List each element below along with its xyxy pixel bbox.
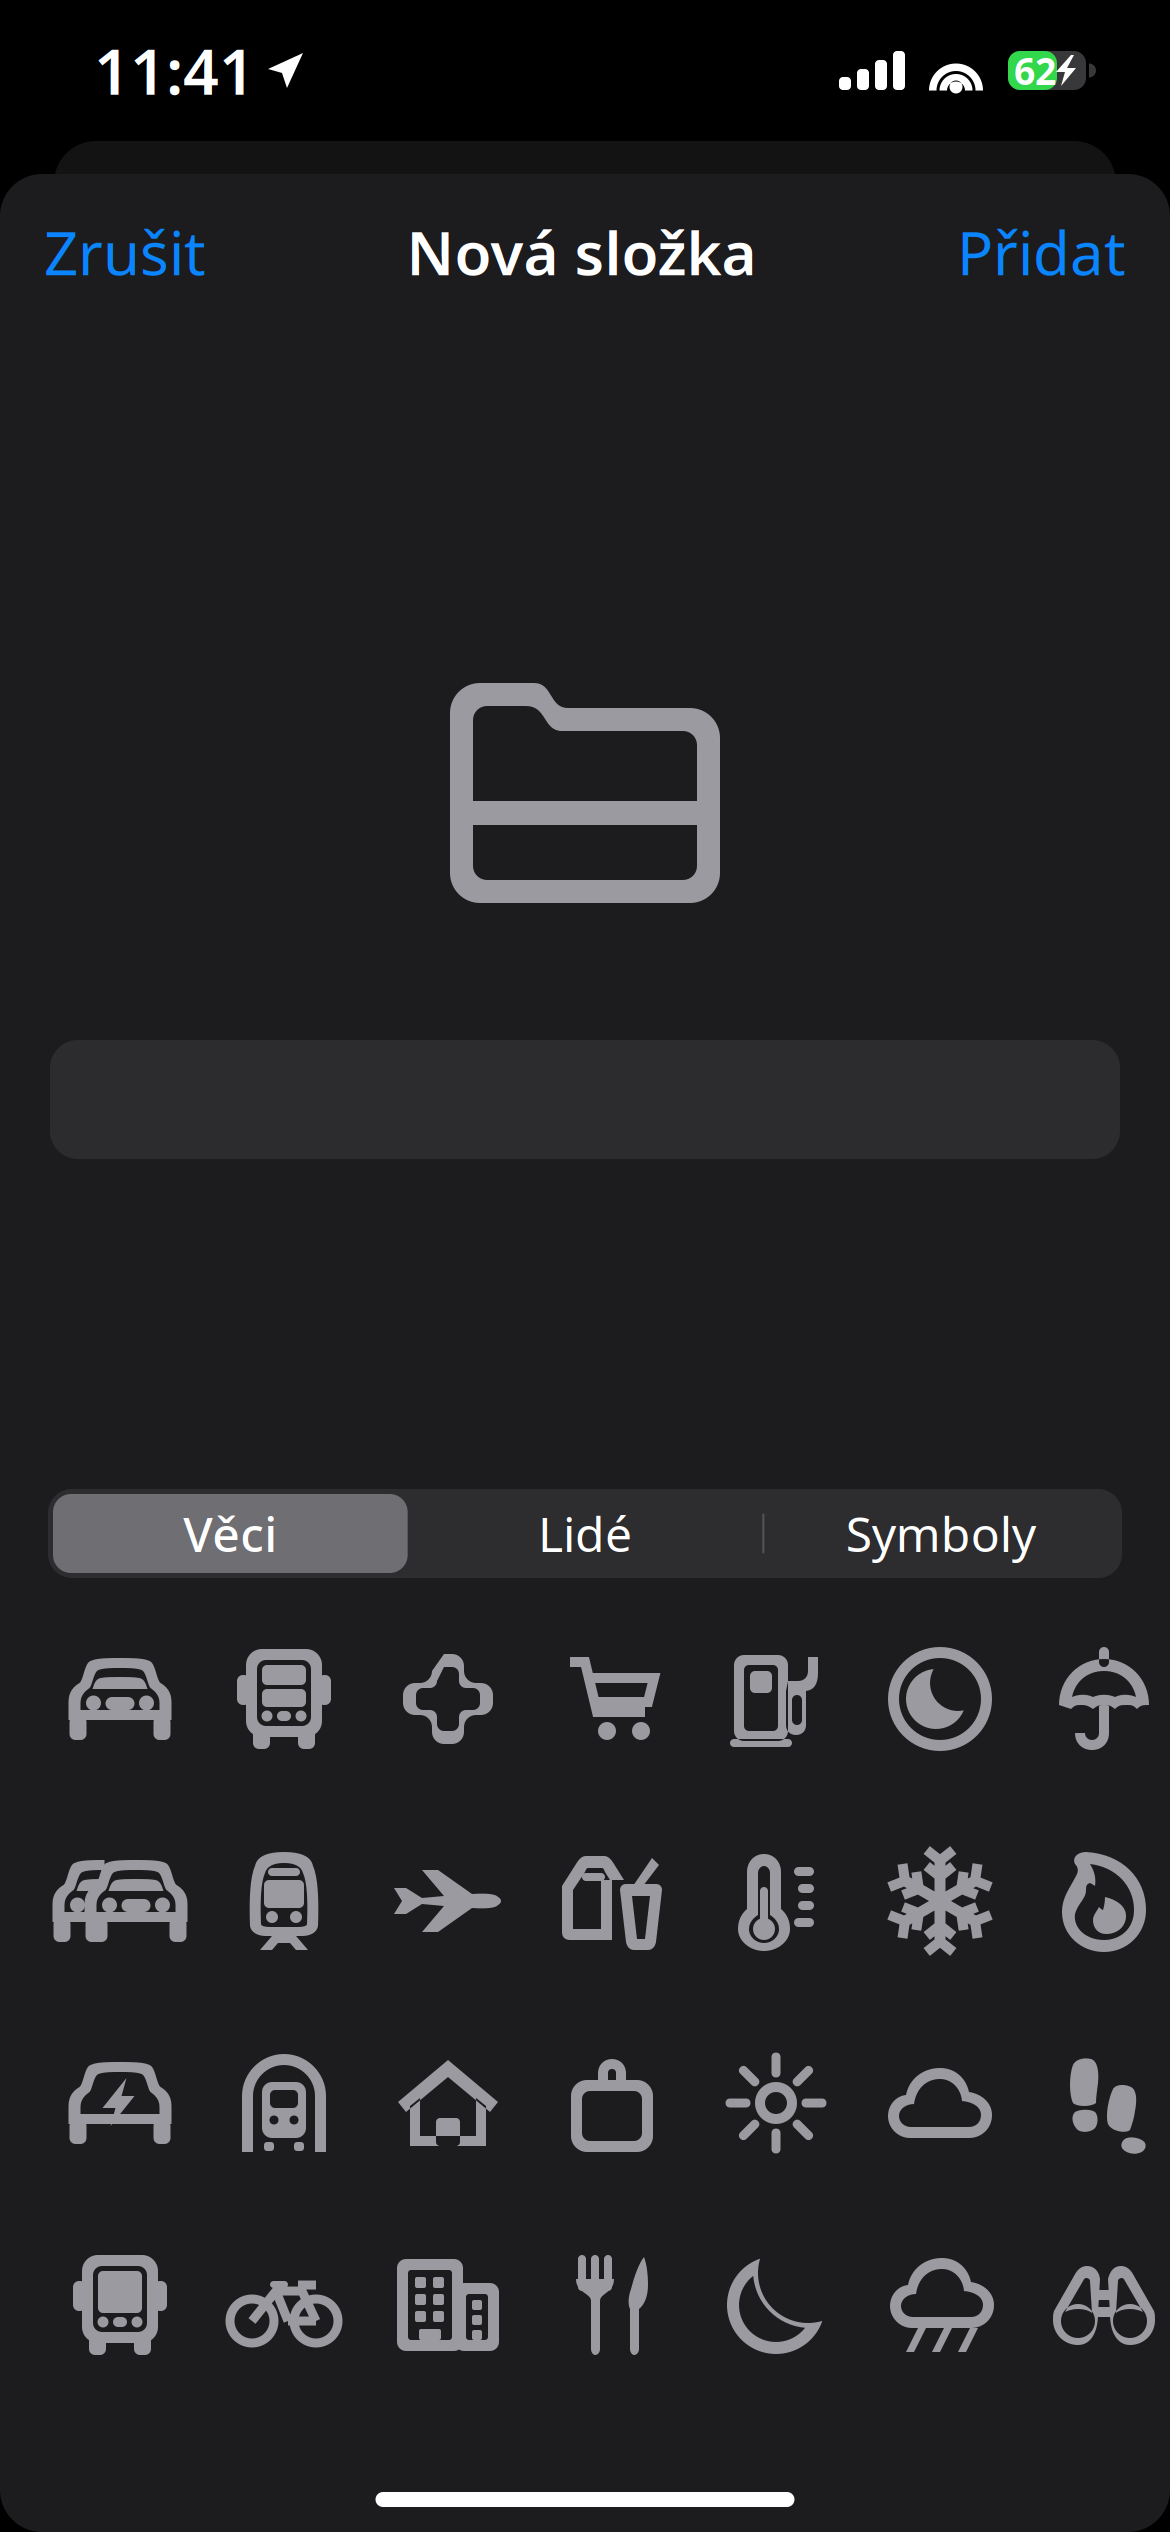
button[interactable]: Shopping bag <box>530 2002 694 2204</box>
button[interactable]: Sun <box>694 2002 858 2204</box>
staticText: Věci <box>183 1502 277 1565</box>
button[interactable]: Buildings <box>366 2204 530 2406</box>
button[interactable]: Home <box>366 2002 530 2204</box>
button[interactable]: Rain <box>858 2204 1022 2406</box>
button[interactable]: Drinks <box>530 1800 694 2002</box>
button[interactable]: Bus <box>202 1598 366 1800</box>
button[interactable]: Night <box>858 1598 1022 1800</box>
staticText: 11:41 <box>94 29 255 112</box>
staticText: Nová složka <box>406 212 756 292</box>
button[interactable]: Shopping cart <box>530 1598 694 1800</box>
button[interactable]: Symboly <box>762 1494 1117 1573</box>
button[interactable]: Train <box>202 1800 366 2002</box>
button[interactable]: Fuel <box>694 1598 858 1800</box>
staticText: Zrušit <box>44 212 206 292</box>
button[interactable]: Zrušit <box>44 212 206 292</box>
button[interactable]: Moon <box>694 2204 858 2406</box>
button[interactable]: Car <box>38 1598 202 1800</box>
button[interactable]: Temperature <box>694 1800 858 2002</box>
button[interactable]: Subway <box>202 2002 366 2204</box>
button[interactable]: Bicycle <box>202 2204 366 2406</box>
button[interactable]: Airplane <box>366 1800 530 2002</box>
button[interactable]: Binoculars <box>1022 2204 1170 2406</box>
staticText: Přidat <box>957 212 1126 292</box>
button[interactable]: Snow <box>858 1800 1022 2002</box>
staticText: 62 <box>1014 46 1056 95</box>
button[interactable]: Umbrella <box>1022 1598 1170 1800</box>
button[interactable]: Electric car <box>38 2002 202 2204</box>
button[interactable]: Přidat <box>957 212 1126 292</box>
staticText: Lidé <box>538 1502 632 1565</box>
button[interactable]: Věci <box>53 1494 408 1573</box>
staticText: Symboly <box>846 1502 1036 1565</box>
button[interactable]: Coach <box>38 2204 202 2406</box>
button[interactable]: Pharmacy <box>366 1598 530 1800</box>
button[interactable]: Lidé <box>408 1494 762 1573</box>
button[interactable]: Traffic <box>38 1800 202 2002</box>
button[interactable]: Cloud <box>858 2002 1022 2204</box>
button[interactable]: Restaurant <box>530 2204 694 2406</box>
button[interactable]: Fire <box>1022 1800 1170 2002</box>
button[interactable]: Walking <box>1022 2002 1170 2204</box>
